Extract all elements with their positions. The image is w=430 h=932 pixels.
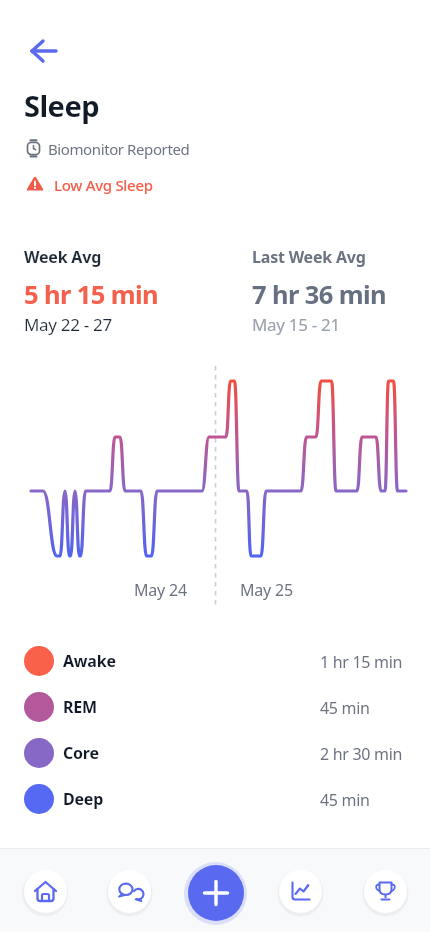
staticText: Week Avg [24, 246, 102, 268]
staticText: Core [63, 742, 99, 764]
staticText: May 24 [134, 579, 187, 601]
staticText: 45 min [320, 697, 370, 719]
staticText: May 15 - 21 [252, 313, 340, 336]
staticText: Deep [63, 788, 104, 810]
staticText: Biomonitor Reported [48, 139, 190, 159]
button[interactable] [108, 870, 151, 913]
button[interactable] [23, 35, 63, 67]
staticText: Last Week Avg [252, 246, 366, 268]
staticText: 45 min [320, 789, 370, 811]
staticText: Sleep [24, 86, 100, 125]
staticText: REM [63, 696, 97, 718]
button[interactable] [279, 870, 322, 913]
staticText: 2 hr 30 min [320, 743, 403, 765]
button[interactable] [364, 870, 407, 913]
button[interactable] [188, 865, 244, 921]
staticText: 1 hr 15 min [320, 651, 403, 673]
staticText: Low Avg Sleep [54, 175, 153, 195]
button[interactable] [24, 870, 67, 913]
staticText: Awake [63, 650, 116, 672]
staticText: 5 hr 15 min [24, 277, 159, 312]
staticText: May 22 - 27 [24, 313, 112, 336]
staticText: 7 hr 36 min [252, 277, 387, 312]
staticText: May 25 [240, 579, 293, 601]
